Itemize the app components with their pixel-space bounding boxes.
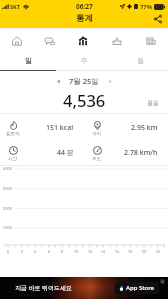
button[interactable]: Statistics <box>66 29 100 52</box>
staticText: 일 <box>25 56 32 65</box>
staticText: 20 <box>139 249 149 254</box>
staticText: 16 <box>112 249 122 254</box>
staticText: 14 <box>98 249 108 254</box>
staticText: 통계 <box>76 13 93 24</box>
button[interactable]: 칼로리 <box>0 114 84 139</box>
button[interactable]: Ranking <box>100 29 134 52</box>
staticText: 4,536 <box>63 89 106 111</box>
button[interactable]: App Store <box>119 284 155 292</box>
button[interactable]: Previous day <box>51 74 65 88</box>
staticText: 4000 <box>0 166 12 171</box>
staticText: App Store <box>126 284 155 292</box>
button[interactable]: 거리 <box>84 114 168 139</box>
staticText: 걸음 <box>147 99 159 107</box>
staticText: 12 <box>85 249 95 254</box>
staticText: 지금 바로 뛰어드세요 <box>15 284 73 292</box>
button[interactable]: Chat <box>33 29 66 52</box>
staticText: 6 <box>44 249 54 254</box>
staticText: 18 <box>125 249 135 254</box>
button[interactable]: 지금 바로 뛰어드세요 <box>0 277 168 299</box>
button[interactable]: Share <box>151 12 164 25</box>
staticText: 44 분 <box>57 148 74 158</box>
staticText: 8 <box>57 249 67 254</box>
staticText: i <box>162 279 164 284</box>
staticText: 1000 <box>0 225 12 230</box>
staticText: 2000 <box>0 206 12 211</box>
staticText: 7월 25일 <box>69 76 99 86</box>
staticText: SKT <box>10 3 21 11</box>
staticText: 2.95 km <box>131 123 158 133</box>
staticText: 06:27 <box>76 2 93 11</box>
staticText: 거리 <box>92 131 102 137</box>
button[interactable]: 일 <box>0 52 56 69</box>
staticText: 주 <box>81 56 88 65</box>
staticText: 월 <box>137 56 144 65</box>
staticText: 시간 <box>8 156 18 162</box>
button[interactable]: 월 <box>112 52 168 69</box>
button[interactable]: 시간 <box>0 139 84 164</box>
staticText: 칼로리 <box>6 131 20 137</box>
staticText: 22 <box>153 249 163 254</box>
staticText: 0 <box>3 249 13 254</box>
staticText: 2.78 km/h <box>124 148 158 158</box>
button[interactable]: 주 <box>56 52 112 69</box>
staticText: 151 kcal <box>46 123 74 133</box>
staticText: 10 <box>71 249 81 254</box>
staticText: 2 <box>17 249 27 254</box>
staticText: 3000 <box>0 186 12 191</box>
button[interactable]: Home <box>0 29 33 52</box>
staticText: 77% <box>140 3 152 11</box>
button[interactable]: News <box>134 29 168 52</box>
staticText: 4 <box>30 249 40 254</box>
button[interactable]: Next day <box>103 74 117 88</box>
button[interactable]: 속도 <box>84 139 168 164</box>
staticText: 속도 <box>92 156 102 162</box>
